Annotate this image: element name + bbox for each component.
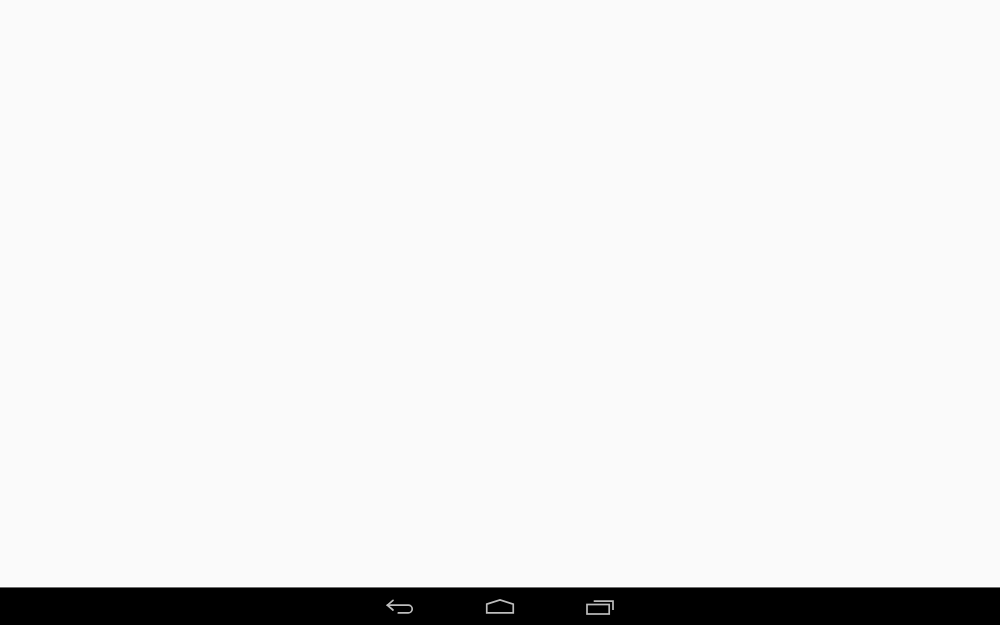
button[interactable]: Recent apps xyxy=(569,588,631,625)
button[interactable]: Back xyxy=(369,588,431,625)
button[interactable]: Home xyxy=(469,588,531,625)
